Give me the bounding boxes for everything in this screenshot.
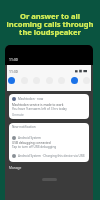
button[interactable]: Quick setting 7 — [83, 77, 90, 84]
staticText: Or answer to all incoming calls through … — [0, 11, 100, 37]
button[interactable]: Quick setting 5 — [58, 77, 65, 84]
staticText: Android System · Charging this device vi… — [18, 154, 85, 158]
button[interactable]: Quick setting 2 — [21, 77, 28, 84]
button[interactable]: Quick setting 4 — [46, 77, 53, 84]
button[interactable]: Quick setting 3 — [33, 77, 40, 84]
button[interactable]: Quick setting 6 — [71, 77, 78, 84]
staticText: 11:30 — [9, 57, 18, 62]
staticText: New notification — [12, 125, 36, 129]
staticText: You have 9 answers left of 3 hrs today — [12, 107, 67, 111]
staticText: Android System — [18, 136, 41, 140]
staticText: USB debugging connected — [12, 141, 51, 145]
staticText: Mashtodon · now — [18, 97, 44, 101]
button[interactable]: Unmute — [12, 113, 24, 117]
staticText: Mashtodon service is made to work — [12, 103, 64, 107]
button[interactable]: Collapse shade — [42, 178, 57, 181]
button[interactable]: Mashtodon · now — [9, 94, 89, 119]
button[interactable]: New notification — [9, 123, 89, 162]
button[interactable]: Manage — [9, 166, 22, 170]
staticText: 11:30 — [9, 69, 18, 74]
staticText: Tap to turn off USB debugging — [12, 145, 57, 149]
button[interactable]: Quick setting 1 — [8, 77, 15, 84]
